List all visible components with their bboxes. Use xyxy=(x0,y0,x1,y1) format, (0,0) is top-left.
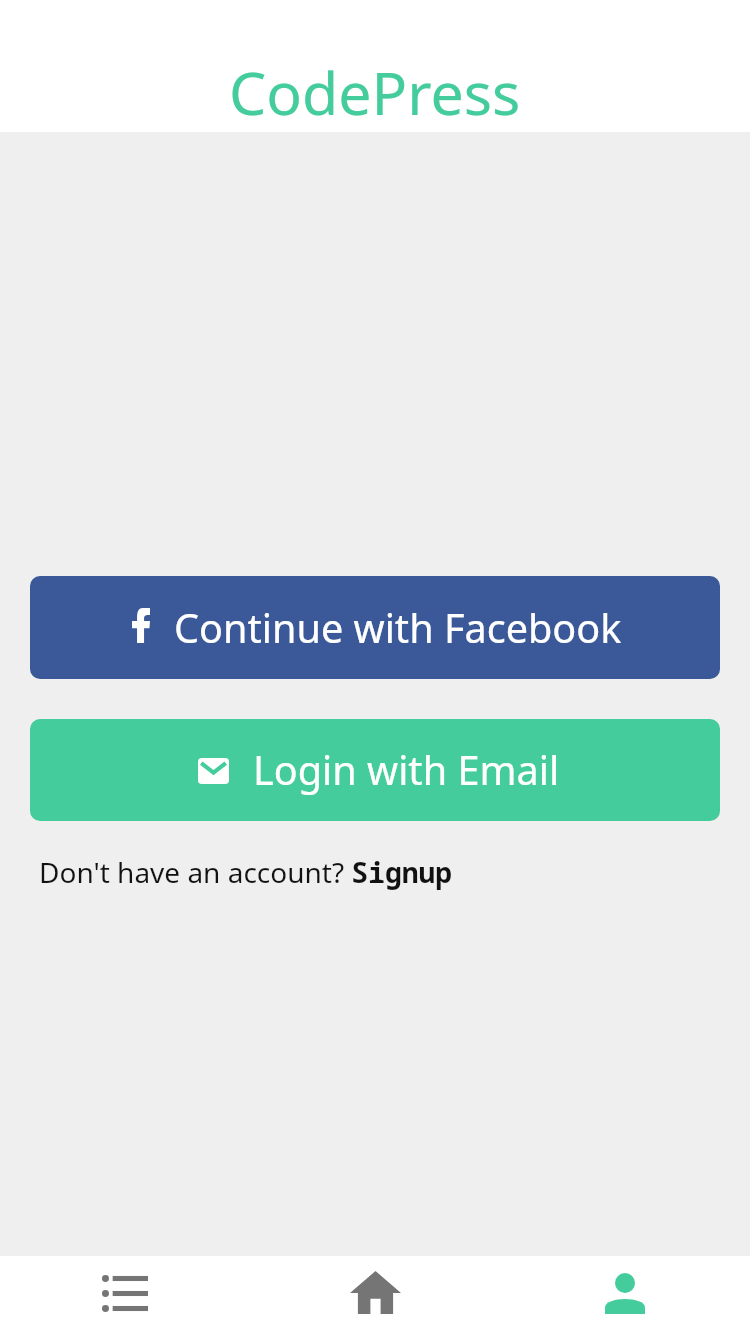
button[interactable]: Home xyxy=(250,1256,500,1334)
staticText: Don't have an account? Signup xyxy=(39,853,453,891)
button[interactable]: Profile xyxy=(500,1256,750,1334)
staticText: Continue with Facebook xyxy=(174,601,622,655)
staticText: CodePress xyxy=(229,52,521,132)
staticText: Login with Email xyxy=(253,743,560,797)
button[interactable]: Continue with Facebook xyxy=(30,576,720,679)
button[interactable]: Login with Email xyxy=(30,719,720,821)
button[interactable]: List xyxy=(0,1256,250,1334)
